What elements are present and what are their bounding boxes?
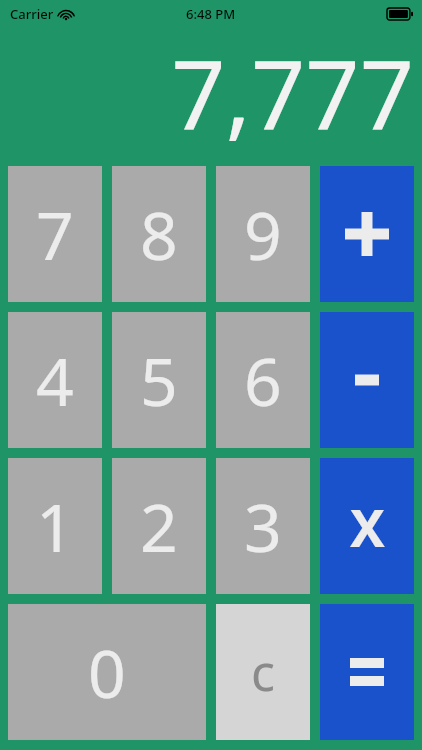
staticText: 4: [36, 335, 74, 425]
staticText: Carrier: [10, 5, 54, 23]
button[interactable]: 7: [8, 166, 102, 302]
button[interactable]: Multiply: [320, 458, 414, 594]
staticText: 6:48 PM: [186, 5, 236, 23]
button[interactable]: 8: [112, 166, 206, 302]
button[interactable]: 9: [216, 166, 310, 302]
staticText: 7: [36, 189, 74, 279]
button[interactable]: 6: [216, 312, 310, 448]
button[interactable]: 0: [8, 604, 206, 740]
staticText: 5: [140, 335, 178, 425]
staticText: 1: [36, 481, 74, 571]
staticText: 3: [244, 481, 282, 571]
staticText: 6: [244, 335, 282, 425]
button[interactable]: 3: [216, 458, 310, 594]
staticText: X: [350, 491, 385, 562]
staticText: 0: [88, 627, 126, 717]
button[interactable]: 2: [112, 458, 206, 594]
button[interactable]: 1: [8, 458, 102, 594]
button[interactable]: Equals: [320, 604, 414, 740]
button[interactable]: 5: [112, 312, 206, 448]
button[interactable]: Plus: [320, 166, 414, 302]
staticText: c: [251, 638, 275, 706]
button[interactable]: Minus: [320, 312, 414, 448]
staticText: 7,777: [171, 27, 414, 156]
staticText: 8: [140, 189, 178, 279]
button[interactable]: 4: [8, 312, 102, 448]
staticText: 9: [244, 189, 282, 279]
staticText: 2: [140, 481, 178, 571]
button[interactable]: c: [216, 604, 310, 740]
